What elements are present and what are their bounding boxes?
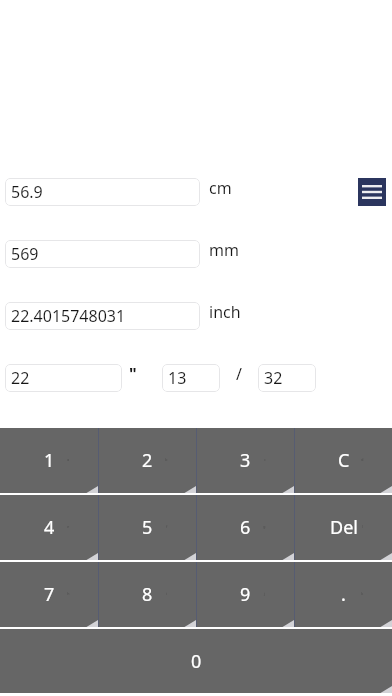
staticText: 13 bbox=[168, 367, 187, 389]
button[interactable]: 7 bbox=[0, 562, 98, 627]
button[interactable]: 569 bbox=[5, 240, 200, 268]
staticText: i bbox=[166, 591, 168, 596]
staticText: 1 bbox=[44, 448, 55, 473]
staticText: 8 bbox=[142, 582, 153, 607]
staticText: 4 bbox=[44, 515, 55, 540]
staticText: 6 bbox=[240, 515, 251, 540]
staticText: 56.9 bbox=[11, 181, 43, 203]
staticText: b bbox=[165, 457, 168, 462]
button[interactable]: 32 bbox=[258, 364, 316, 392]
staticText: 0 bbox=[191, 649, 202, 674]
button[interactable]: 1 bbox=[0, 428, 98, 493]
staticText: a bbox=[67, 457, 70, 462]
staticText: 2 bbox=[142, 448, 153, 473]
button[interactable]: 8 bbox=[99, 562, 196, 627]
button[interactable]: 0 bbox=[0, 629, 392, 693]
staticText: Del bbox=[330, 515, 358, 540]
staticText: mm bbox=[209, 239, 239, 261]
staticText: e bbox=[67, 524, 70, 529]
button[interactable]: 56.9 bbox=[5, 178, 200, 206]
staticText: " bbox=[129, 363, 137, 385]
button[interactable]: 6 bbox=[197, 495, 294, 560]
staticText: . bbox=[341, 582, 346, 607]
button[interactable]: 13 bbox=[162, 364, 220, 392]
staticText: c bbox=[264, 457, 266, 462]
button[interactable]: 5 bbox=[99, 495, 196, 560]
button[interactable]: 4 bbox=[0, 495, 98, 560]
staticText: 9 bbox=[240, 582, 251, 607]
staticText: 569 bbox=[11, 243, 39, 265]
button[interactable]: 22.4015748031 bbox=[5, 302, 200, 330]
staticText: / bbox=[236, 363, 242, 385]
staticText: l bbox=[362, 524, 364, 529]
staticText: 22.4015748031 bbox=[11, 305, 126, 327]
staticText: cm bbox=[209, 177, 232, 199]
button[interactable]: 9 bbox=[197, 562, 294, 627]
staticText: 7 bbox=[44, 582, 55, 607]
staticText: f bbox=[166, 524, 168, 529]
staticText: inch bbox=[209, 301, 241, 323]
staticText: 22 bbox=[11, 367, 30, 389]
button[interactable]: 3 bbox=[197, 428, 294, 493]
button[interactable]: 22 bbox=[5, 364, 122, 392]
button[interactable]: Menu bbox=[358, 178, 386, 206]
staticText: k bbox=[361, 591, 364, 596]
staticText: 32 bbox=[264, 367, 283, 389]
staticText: g bbox=[263, 524, 266, 529]
button[interactable]: Del bbox=[295, 495, 392, 560]
button[interactable]: C bbox=[295, 428, 392, 493]
staticText: C bbox=[338, 448, 350, 473]
button[interactable]: 2 bbox=[99, 428, 196, 493]
staticText: h bbox=[67, 591, 70, 596]
staticText: j bbox=[264, 591, 266, 596]
staticText: 3 bbox=[240, 448, 251, 473]
staticText: 5 bbox=[142, 515, 153, 540]
button[interactable]: . bbox=[295, 562, 392, 627]
staticText: d bbox=[361, 457, 364, 462]
